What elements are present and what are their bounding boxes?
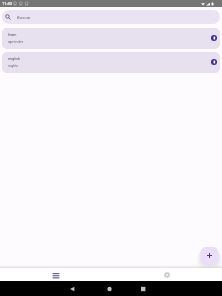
staticText: Buscar [17, 15, 31, 20]
button[interactable]: Settings [111, 268, 222, 281]
button[interactable]: Buscar [2, 10, 220, 24]
button[interactable]: Play pronunciation [210, 58, 218, 66]
button[interactable]: Play pronunciation [210, 34, 218, 42]
staticText: learn [8, 32, 17, 36]
button[interactable]: learn [2, 28, 220, 49]
staticText: inglés [8, 63, 19, 67]
staticText: aprender [8, 39, 24, 43]
button[interactable]: english [2, 52, 220, 73]
button[interactable]: Word list [0, 268, 111, 281]
staticText: english [8, 56, 21, 60]
button[interactable]: Add word [201, 247, 218, 264]
staticText: 11:43 [2, 1, 12, 6]
